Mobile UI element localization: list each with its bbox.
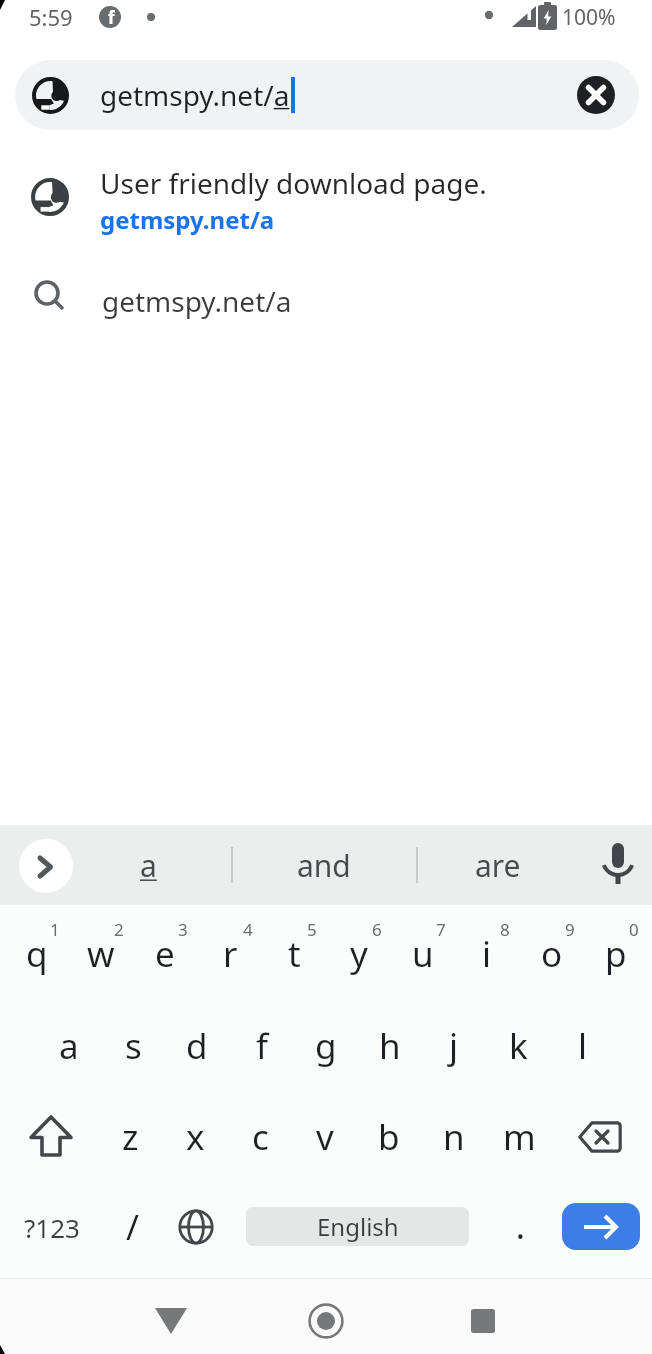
staticText: . xyxy=(516,1205,525,1249)
button[interactable]: a xyxy=(108,825,188,905)
button[interactable]: m xyxy=(487,1092,551,1182)
staticText: r xyxy=(223,930,238,978)
button[interactable]: / xyxy=(101,1182,165,1272)
staticText: e xyxy=(155,930,175,978)
staticText: v xyxy=(316,1113,334,1161)
staticText: 4 xyxy=(243,918,253,941)
staticText: 0 xyxy=(629,918,639,941)
staticText: 7 xyxy=(436,918,446,941)
staticText: x xyxy=(186,1113,205,1161)
staticText: d xyxy=(186,1022,208,1070)
staticText: 1 xyxy=(50,918,60,941)
staticText: o xyxy=(541,930,563,978)
button[interactable] xyxy=(577,76,615,114)
button[interactable] xyxy=(453,1291,513,1351)
staticText: 9 xyxy=(565,918,575,941)
staticText: 8 xyxy=(500,918,510,941)
staticText: h xyxy=(379,1022,401,1070)
button[interactable]: k xyxy=(486,1001,550,1091)
staticText: 6 xyxy=(372,918,382,941)
button[interactable]: a xyxy=(37,1001,101,1091)
button[interactable] xyxy=(0,150,652,245)
staticText: / xyxy=(126,1203,140,1251)
staticText: 100% xyxy=(562,3,616,32)
staticText: u xyxy=(412,930,434,978)
staticText: ?123 xyxy=(24,1210,80,1245)
button[interactable]: h xyxy=(358,1001,422,1091)
staticText: t xyxy=(288,930,301,978)
staticText: and xyxy=(297,845,351,886)
button[interactable] xyxy=(562,1203,640,1250)
button[interactable]: p xyxy=(584,909,648,999)
button[interactable]: f xyxy=(230,1001,294,1091)
button[interactable]: n xyxy=(422,1092,486,1182)
button[interactable] xyxy=(296,1291,356,1351)
button[interactable]: v xyxy=(293,1092,357,1182)
button[interactable]: q xyxy=(5,909,69,999)
button[interactable] xyxy=(141,1291,201,1351)
button[interactable]: e xyxy=(133,909,197,999)
staticText: are xyxy=(475,845,521,886)
button[interactable]: z xyxy=(98,1092,162,1182)
staticText: j xyxy=(449,1022,459,1070)
staticText: f xyxy=(256,1022,269,1070)
staticText: c xyxy=(252,1113,269,1161)
button[interactable]: . xyxy=(495,1197,545,1257)
staticText: z xyxy=(122,1113,139,1161)
staticText: 5 xyxy=(307,918,317,941)
button[interactable]: l xyxy=(551,1001,615,1091)
staticText: i xyxy=(482,930,492,978)
staticText: y xyxy=(350,930,368,978)
button[interactable] xyxy=(570,1107,630,1167)
button[interactable]: English xyxy=(246,1207,469,1246)
staticText: m xyxy=(503,1113,536,1161)
staticText: a xyxy=(59,1022,79,1070)
button[interactable]: d xyxy=(165,1001,229,1091)
staticText: f xyxy=(108,6,115,28)
button[interactable]: s xyxy=(101,1001,165,1091)
button[interactable]: u xyxy=(391,909,455,999)
button[interactable]: and xyxy=(274,825,374,905)
button[interactable]: c xyxy=(228,1092,292,1182)
staticText: English xyxy=(317,1210,399,1243)
button[interactable]: o xyxy=(520,909,584,999)
button[interactable]: y xyxy=(327,909,391,999)
staticText: p xyxy=(605,930,627,978)
staticText: 2 xyxy=(114,918,124,941)
staticText: 3 xyxy=(178,918,188,941)
button[interactable]: b xyxy=(357,1092,421,1182)
staticText: s xyxy=(125,1022,142,1070)
staticText: b xyxy=(378,1113,400,1161)
staticText: User friendly download page. xyxy=(100,164,487,202)
button[interactable]: x xyxy=(163,1092,227,1182)
button[interactable] xyxy=(166,1197,226,1257)
button[interactable] xyxy=(21,1107,81,1167)
button[interactable] xyxy=(0,262,652,332)
button[interactable]: w xyxy=(69,909,133,999)
staticText: n xyxy=(443,1113,465,1161)
button[interactable] xyxy=(19,839,73,893)
staticText: g xyxy=(315,1022,337,1070)
button[interactable] xyxy=(15,60,639,130)
staticText: getmspy.net/a xyxy=(102,282,292,320)
button[interactable] xyxy=(595,837,640,893)
button[interactable]: ?123 xyxy=(16,1197,88,1257)
button[interactable]: g xyxy=(294,1001,358,1091)
button[interactable]: j xyxy=(422,1001,486,1091)
staticText: getmspy.net/a xyxy=(100,76,290,114)
button[interactable]: i xyxy=(455,909,519,999)
staticText: l xyxy=(578,1022,588,1070)
button[interactable]: r xyxy=(198,909,262,999)
staticText: 5:59 xyxy=(29,2,73,32)
staticText: w xyxy=(87,930,115,978)
staticText: a xyxy=(140,845,157,886)
staticText: getmspy.net/a xyxy=(100,203,275,236)
button[interactable]: t xyxy=(262,909,326,999)
staticText: k xyxy=(509,1022,528,1070)
staticText: q xyxy=(26,930,48,978)
button[interactable]: are xyxy=(448,825,548,905)
